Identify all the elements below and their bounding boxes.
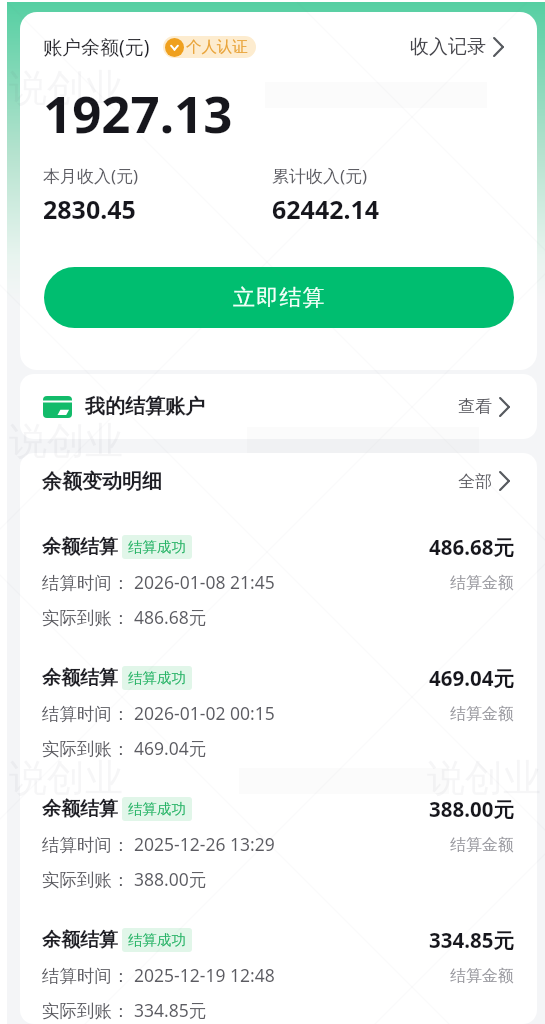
staticText: 全部 xyxy=(458,471,492,492)
staticText: 结算金额 xyxy=(450,835,514,855)
staticText: 立即结算 xyxy=(233,284,326,312)
staticText: 实际到账： 334.85元 xyxy=(42,998,207,1022)
staticText: 本月收入(元) xyxy=(43,164,139,187)
staticText: 结算成功 xyxy=(128,931,186,949)
staticText: 收入记录 xyxy=(410,35,486,59)
staticText: 结算金额 xyxy=(450,966,514,986)
staticText: 结算成功 xyxy=(128,669,186,687)
staticText: 个人认证 xyxy=(186,37,248,57)
staticText: 486.68元 xyxy=(429,533,514,561)
staticText: 结算金额 xyxy=(450,573,514,593)
button[interactable]: 余额结算 xyxy=(20,797,537,928)
staticText: 结算时间： 2025-12-19 12:48 xyxy=(42,963,275,987)
button[interactable]: 余额结算 xyxy=(20,928,537,1024)
button[interactable]: 个人认证 xyxy=(163,36,256,58)
button[interactable]: 余额结算 xyxy=(20,535,537,666)
staticText: 账户余额(元) xyxy=(43,34,150,60)
staticText: 2830.45 xyxy=(43,192,136,226)
staticText: 余额结算 xyxy=(42,928,118,952)
staticText: 说创业 xyxy=(427,754,541,802)
staticText: 余额结算 xyxy=(42,797,118,821)
button[interactable]: 立即结算 xyxy=(44,267,514,328)
staticText: 实际到账： 388.00元 xyxy=(42,867,207,891)
staticText: 334.85元 xyxy=(429,926,514,954)
staticText: 说创业 xyxy=(9,417,123,465)
staticText: 说创业 xyxy=(9,64,123,112)
staticText: 62442.14 xyxy=(272,192,380,226)
staticText: 结算成功 xyxy=(128,538,186,556)
staticText: 结算时间： 2025-12-26 13:29 xyxy=(42,832,275,856)
staticText: 累计收入(元) xyxy=(272,164,368,187)
staticText: 469.04元 xyxy=(429,664,514,692)
staticText: 结算成功 xyxy=(128,800,186,818)
staticText: 余额结算 xyxy=(42,535,118,559)
staticText: 结算时间： 2026-01-02 00:15 xyxy=(42,701,275,725)
staticText: 1927.13 xyxy=(43,78,233,147)
staticText: 我的结算账户 xyxy=(85,394,205,419)
button[interactable]: 我的结算账户 xyxy=(20,374,537,439)
staticText: 查看 xyxy=(458,396,492,417)
staticText: 余额变动明细 xyxy=(42,469,162,494)
button[interactable]: 收入记录 xyxy=(410,35,504,59)
staticText: 余额结算 xyxy=(42,666,118,690)
staticText: 结算金额 xyxy=(450,704,514,724)
button[interactable]: 余额结算 xyxy=(20,666,537,797)
staticText: 实际到账： 486.68元 xyxy=(42,605,207,629)
button[interactable]: 余额变动明细 xyxy=(20,453,537,509)
staticText: 实际到账： 469.04元 xyxy=(42,736,207,760)
staticText: 388.00元 xyxy=(429,795,514,823)
staticText: 说创业 xyxy=(9,754,123,802)
staticText: 结算时间： 2026-01-08 21:45 xyxy=(42,570,275,594)
